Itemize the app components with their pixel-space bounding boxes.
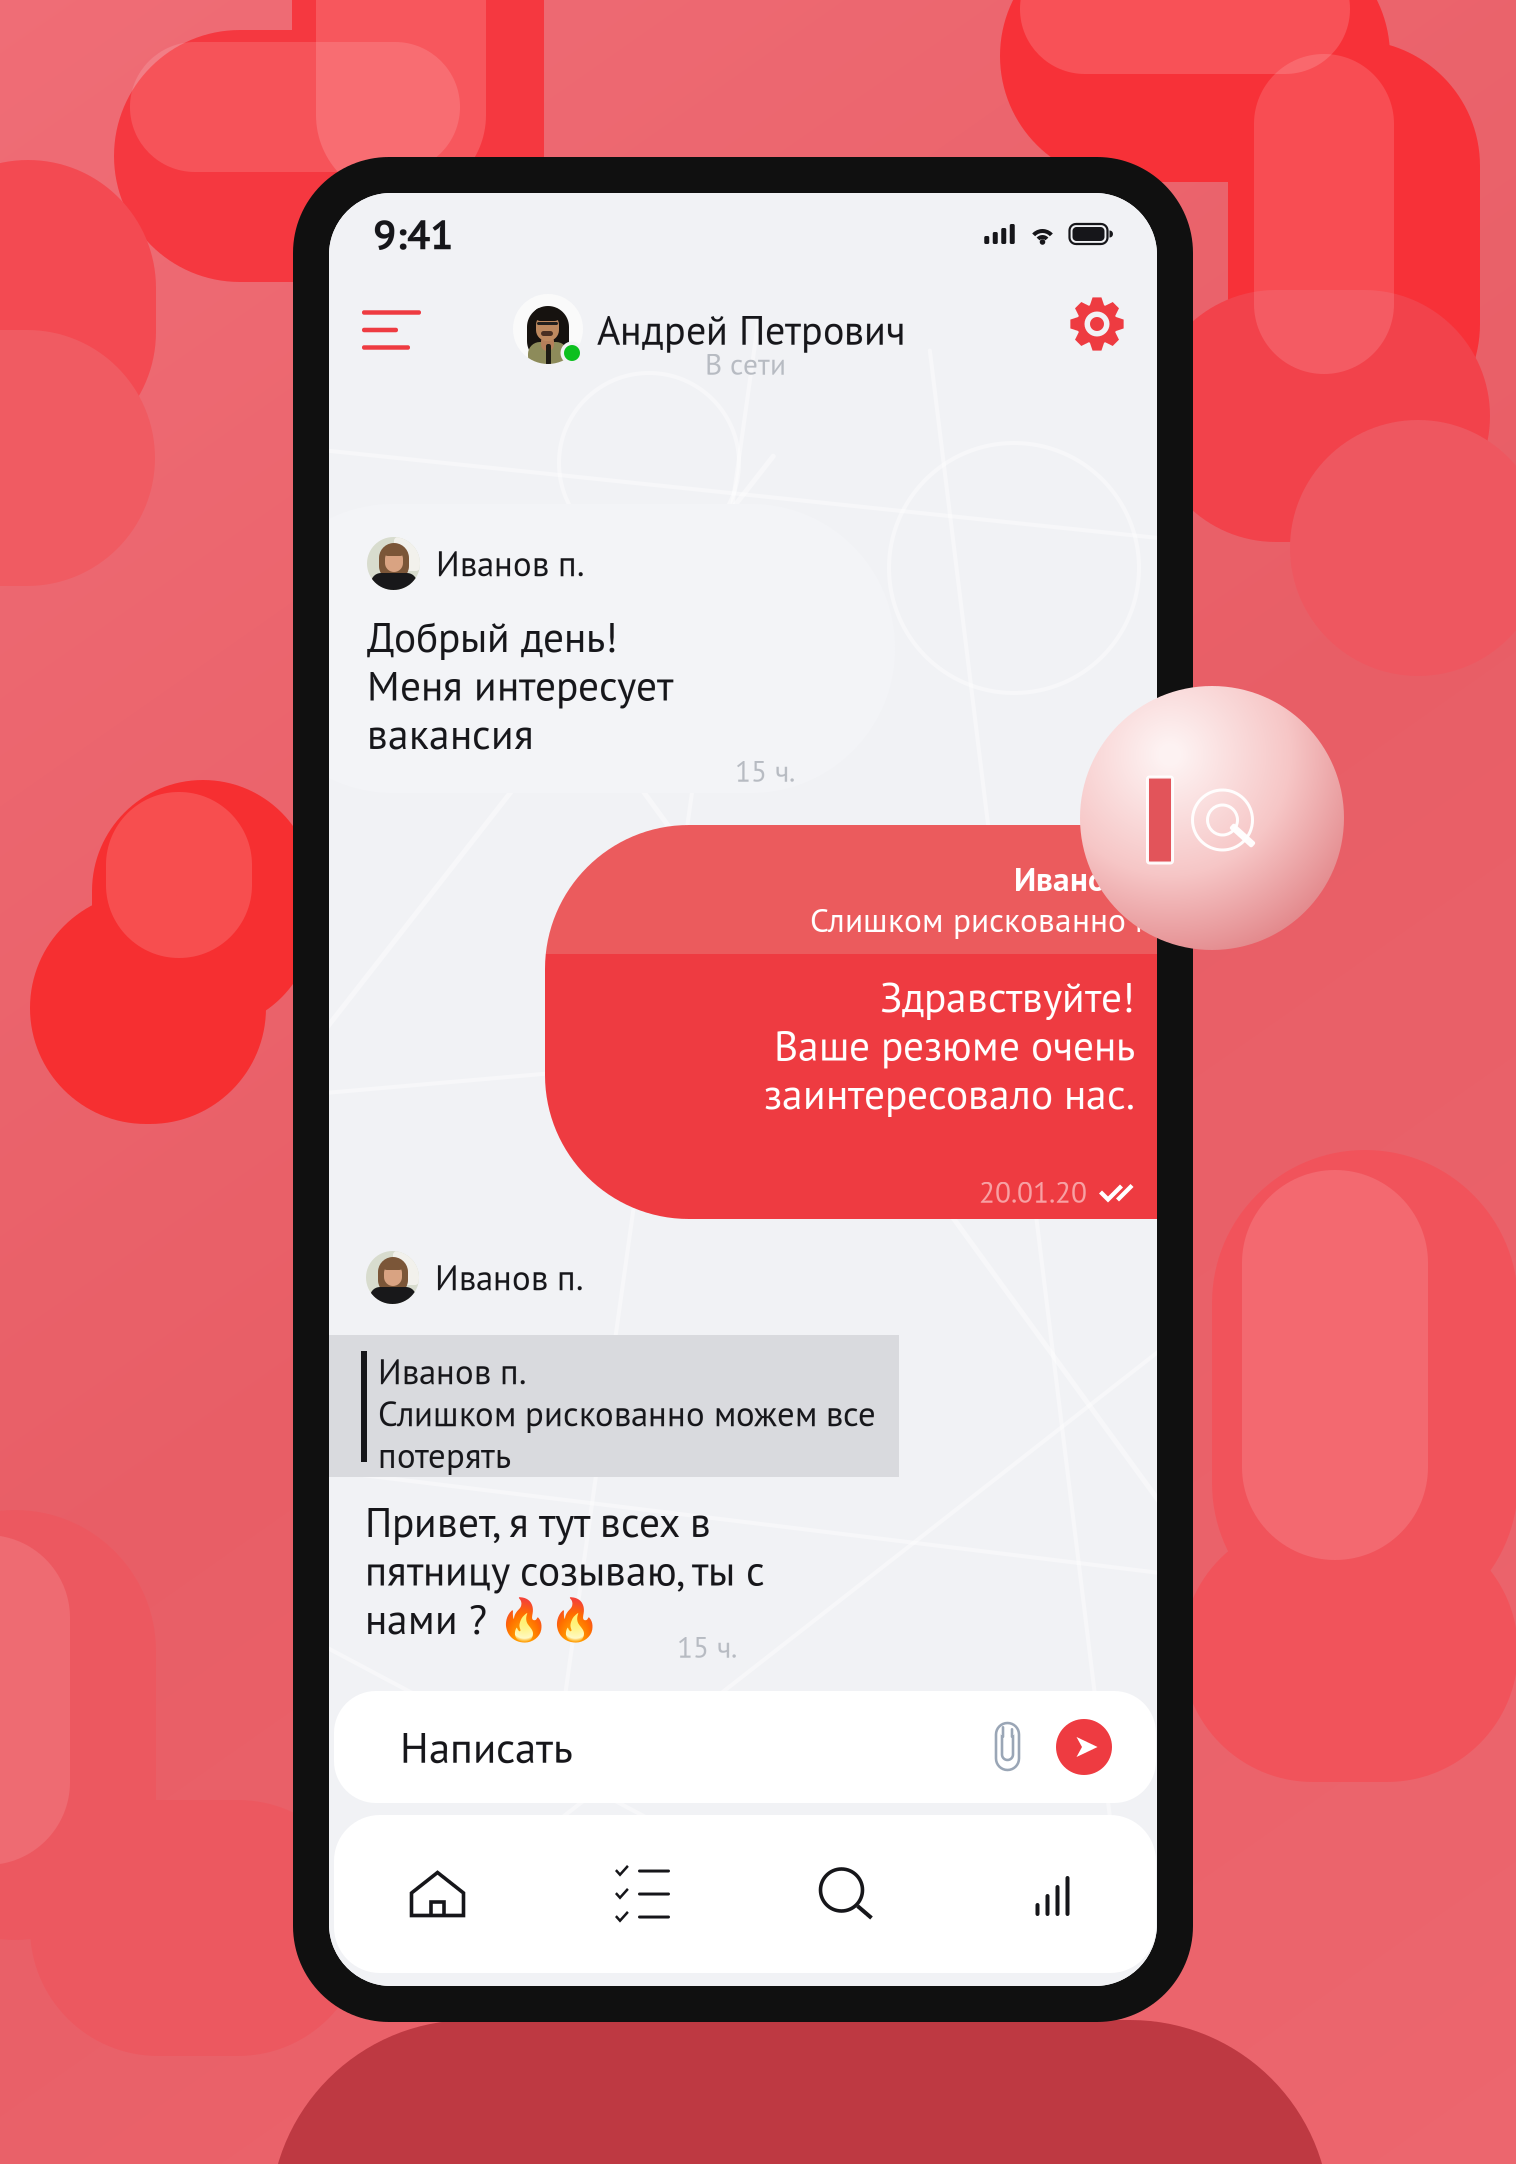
staticText: 15 ч. [735, 752, 795, 790]
staticText: Добрый день! [367, 610, 618, 663]
staticText: потерять [378, 1433, 511, 1478]
staticText: пятницу созываю, ты с [365, 1543, 765, 1597]
button[interactable]: Tasks [540, 1815, 745, 1973]
button[interactable]: Menu [348, 292, 435, 368]
staticText: 15 ч. [677, 1628, 737, 1666]
staticText: Слишком рискованно м [810, 898, 1157, 941]
staticText: вакансия [367, 707, 534, 760]
staticText: Написать [400, 1719, 573, 1775]
button[interactable]: Send [1056, 1719, 1112, 1775]
staticText: Иванов п. [435, 1255, 583, 1300]
staticText: Здравствуйте! [880, 970, 1135, 1023]
staticText: 9:41 [373, 207, 453, 261]
staticText: Иванов п. [436, 541, 584, 586]
button[interactable]: Settings [1058, 285, 1136, 363]
staticText: Слишком рискованно можем все [378, 1391, 876, 1436]
staticText: Привет, я тут всех в [365, 1495, 711, 1548]
staticText: В сети [705, 345, 786, 383]
button[interactable]: Attach [996, 1722, 1023, 1772]
staticText: Андрей Петрович [597, 304, 906, 356]
staticText: нами ? 🔥🔥 [365, 1592, 600, 1645]
staticText: Меня интересует [367, 658, 673, 712]
button[interactable]: Home [335, 1815, 540, 1973]
staticText: Иванов п. [1014, 857, 1157, 900]
staticText: Ваше резюме очень [774, 1018, 1135, 1072]
staticText: заинтересовало нас. [764, 1067, 1135, 1120]
button[interactable]: Search [745, 1815, 950, 1973]
staticText: Иванов п. [378, 1349, 526, 1394]
button[interactable]: Statistics [950, 1815, 1155, 1973]
staticText: 20.01.20 [979, 1173, 1087, 1211]
